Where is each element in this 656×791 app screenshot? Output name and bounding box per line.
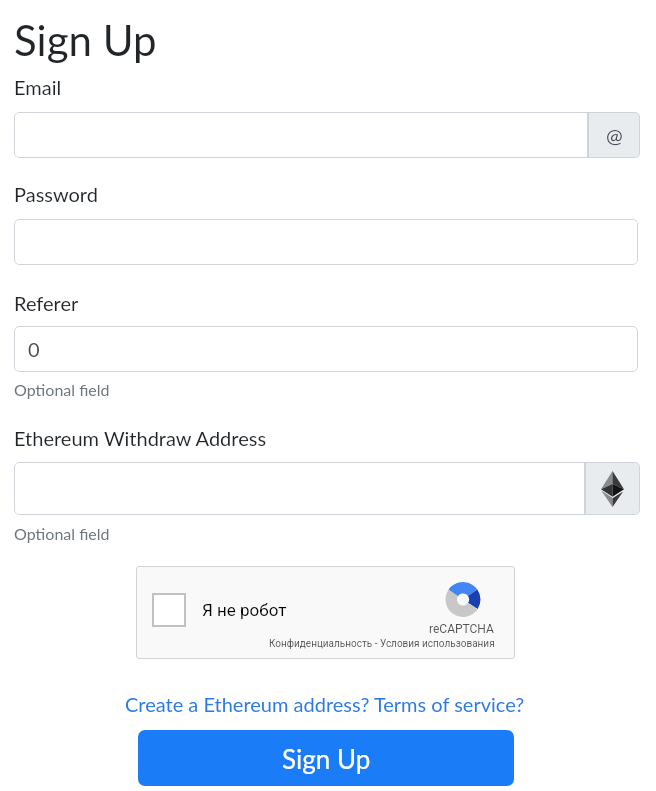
- staticText: Ethereum Withdraw Address: [14, 426, 267, 450]
- button[interactable]: 0: [14, 326, 638, 372]
- staticText: @: [606, 123, 623, 147]
- button[interactable]: [14, 219, 638, 265]
- staticText: Password: [14, 182, 98, 206]
- staticText: 0: [28, 337, 40, 361]
- staticText: Email: [14, 75, 62, 99]
- staticText: Optional field: [14, 380, 110, 399]
- staticText: reCAPTCHA: [429, 622, 494, 636]
- staticText: Optional field: [14, 524, 110, 543]
- button[interactable]: Create a Ethereum address? Terms of serv…: [125, 692, 525, 716]
- button[interactable]: [14, 112, 588, 158]
- staticText: Конфиденциальность - Условия использован…: [269, 638, 495, 650]
- staticText: Я не робот: [202, 600, 287, 620]
- button[interactable]: I am not a robot: [152, 593, 186, 627]
- staticText: Referer: [14, 291, 79, 315]
- button[interactable]: Sign Up: [138, 730, 514, 786]
- button[interactable]: [14, 462, 585, 515]
- staticText: Sign Up: [14, 15, 157, 65]
- staticText: Sign Up: [282, 743, 371, 774]
